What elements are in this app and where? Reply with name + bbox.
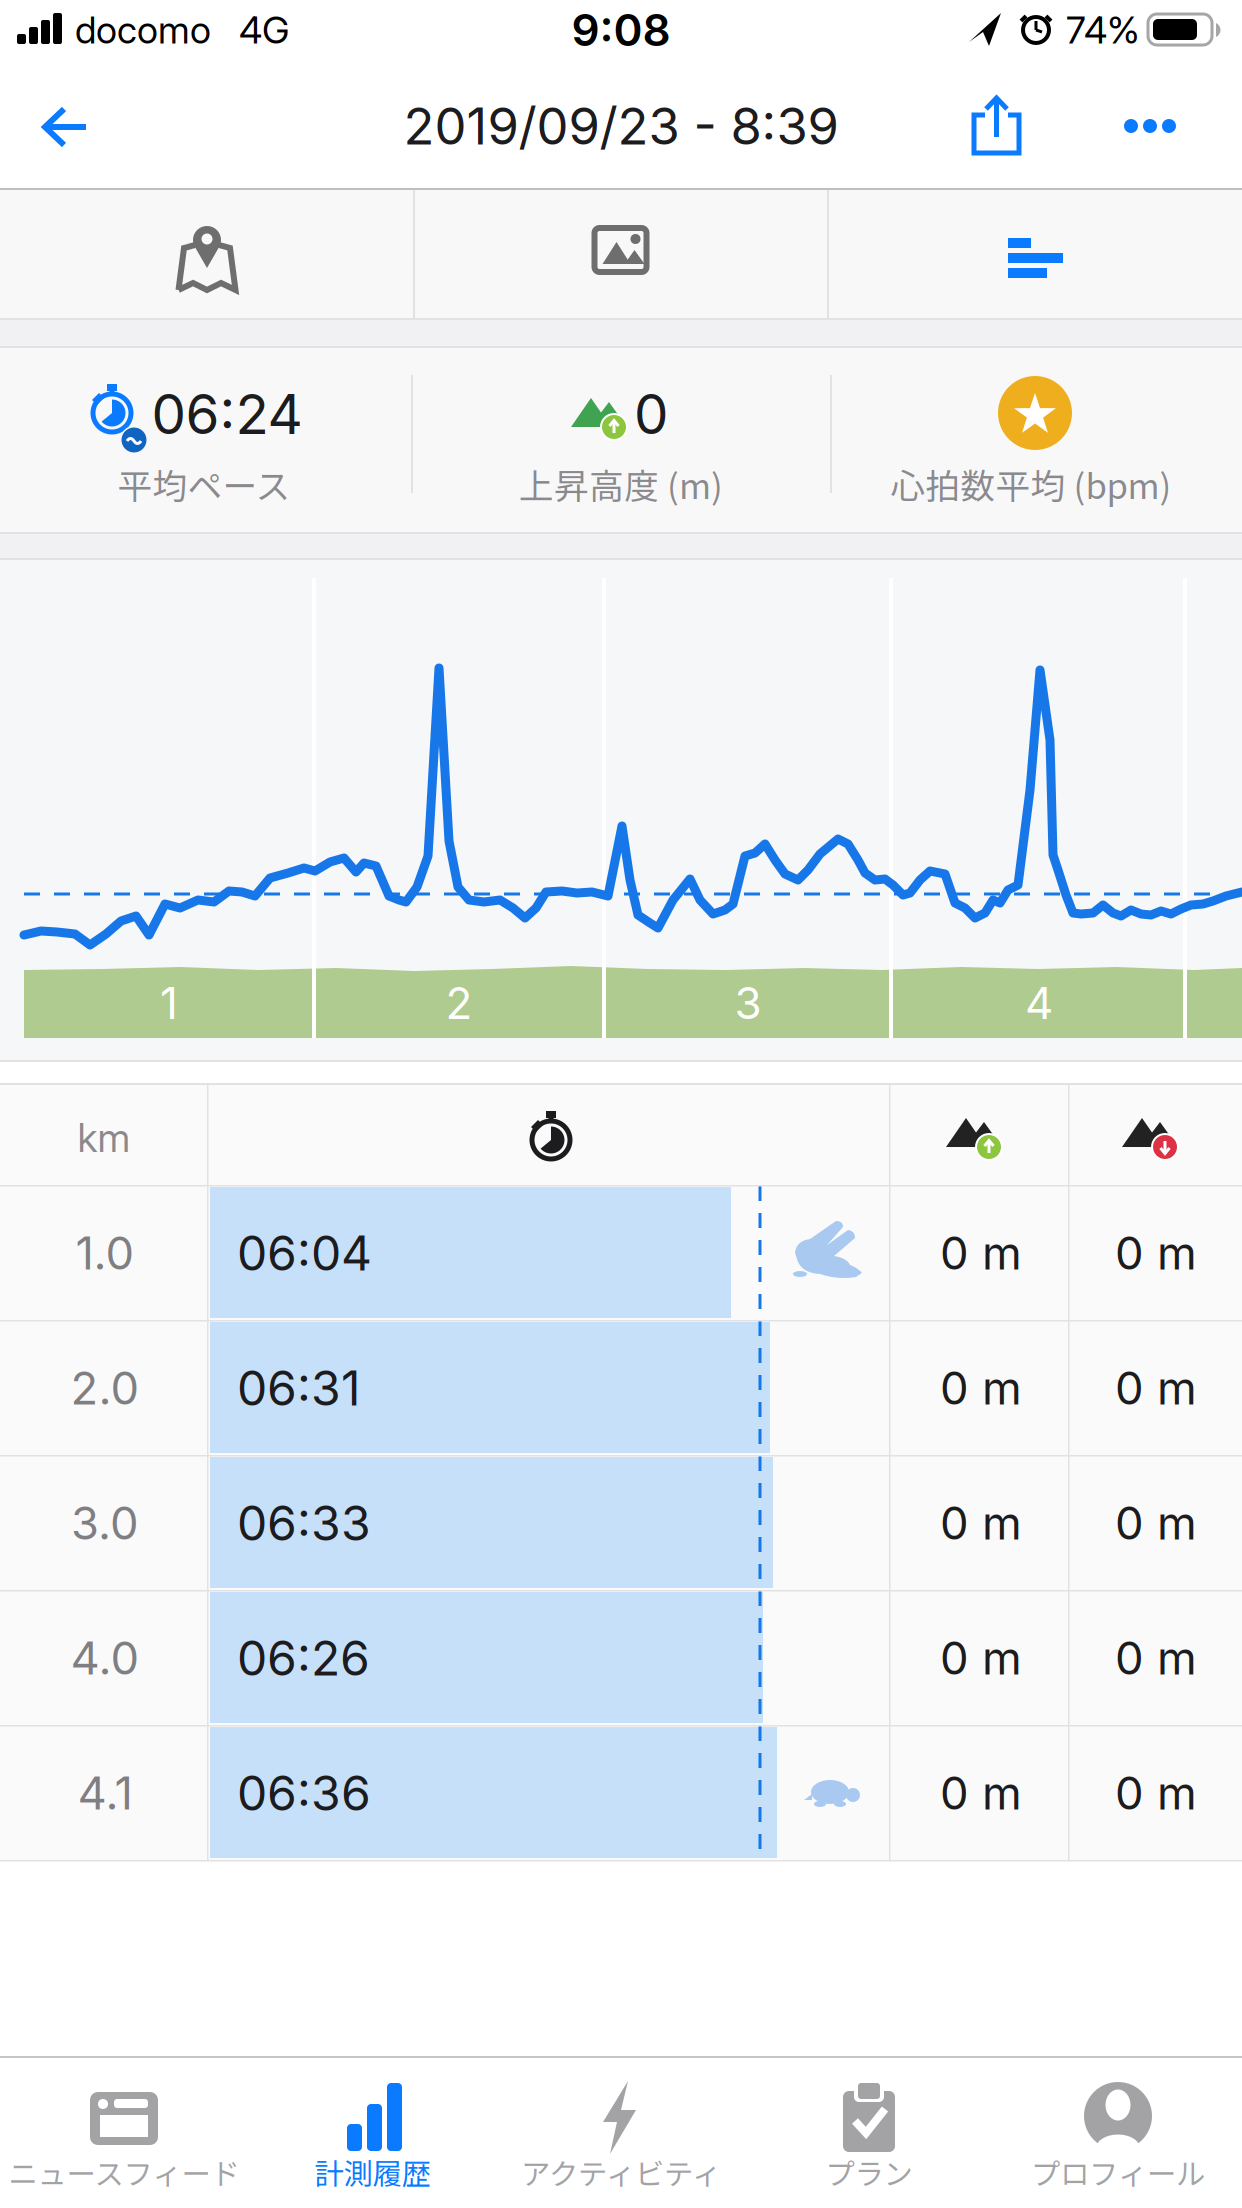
button[interactable]: 計測履歴 [248,2058,497,2208]
staticText: 0 m [940,1226,1022,1280]
staticText: 計測履歴 [314,2151,430,2193]
staticText: 2.0 [70,1361,139,1415]
staticText: 3 [734,976,761,1030]
staticText: 4.1 [77,1766,132,1820]
staticText: 2019/09/23 - 8:39 [403,95,838,157]
staticText: 06:24 [151,381,302,447]
button[interactable]: プロフィール [994,2058,1242,2208]
staticText: 心拍数平均 (bpm) [890,459,1171,509]
staticText: 4G [239,7,289,53]
staticText: 4 [1025,976,1053,1030]
staticText: 平均ペース [117,459,290,509]
staticText: ニュースフィード [8,2151,239,2193]
button[interactable]: アクティビティ [497,2058,745,2208]
staticText: 0 m [1115,1361,1197,1415]
staticText: docomo [75,7,211,53]
staticText: 0 m [1115,1496,1197,1550]
button[interactable]: Stats [827,190,1242,318]
staticText: 0 m [1115,1766,1197,1820]
button[interactable]: More [1119,112,1181,140]
staticText: 上昇高度 (m) [519,459,723,509]
staticText: 4.0 [70,1631,139,1685]
staticText: 0 m [940,1361,1022,1415]
button[interactable]: Share [971,93,1023,159]
button[interactable]: Photos [413,190,827,318]
staticText: 1 [160,976,178,1030]
staticText: 1.0 [75,1226,134,1280]
staticText: 0 m [1115,1226,1197,1280]
staticText: 0 [634,381,668,447]
button[interactable]: Map [0,190,413,318]
button[interactable]: Back [36,93,96,161]
staticText: 0 m [940,1766,1022,1820]
staticText: km [77,1115,130,1161]
staticText: 06:04 [237,1224,372,1282]
staticText: 0 m [1115,1631,1197,1685]
staticText: 06:33 [237,1494,371,1552]
staticText: 9:08 [571,3,670,57]
staticText: 06:36 [237,1764,371,1822]
staticText: プロフィール [1031,2151,1205,2193]
staticText: 3.0 [71,1496,139,1550]
button[interactable]: ニュースフィード [0,2058,248,2208]
staticText: アクティビティ [521,2151,721,2193]
button[interactable]: プラン [745,2058,993,2208]
staticText: 0 m [940,1496,1022,1550]
staticText: 2 [445,976,472,1030]
staticText: 06:26 [237,1629,370,1687]
staticText: プラン [825,2151,912,2193]
staticText: 06:31 [237,1359,361,1417]
staticText: 74% [1066,7,1140,53]
staticText: 0 m [940,1631,1022,1685]
